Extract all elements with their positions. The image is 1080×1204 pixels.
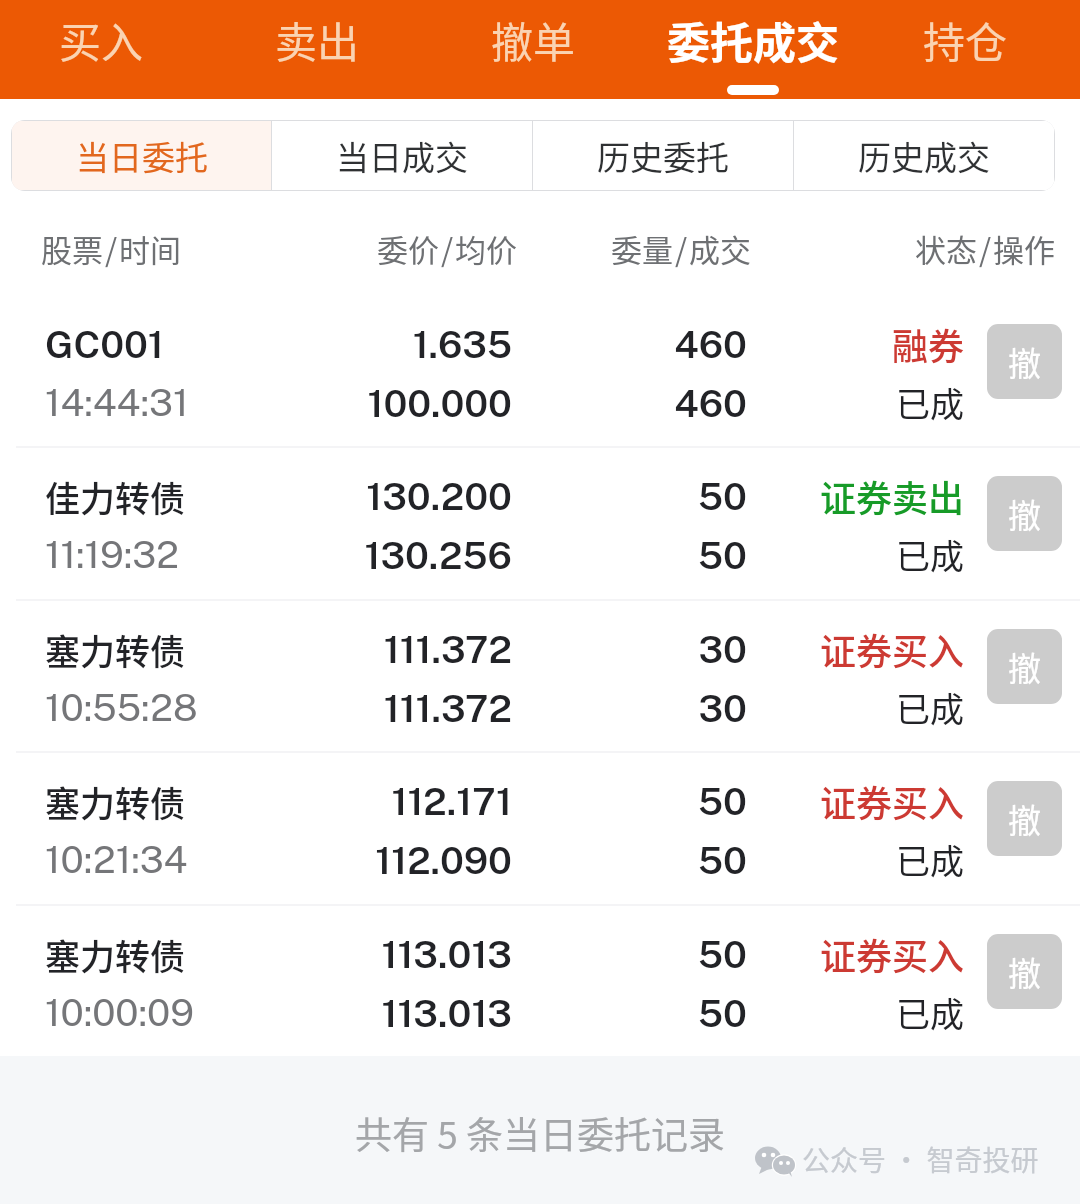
staticText: 460 xyxy=(0,381,747,426)
staticText: 卖出 xyxy=(275,9,360,70)
staticText: 10:55:28 xyxy=(45,685,198,730)
staticText: 50 xyxy=(0,474,747,519)
staticText: GC001 xyxy=(45,322,164,367)
staticText: 委价 / 均价 xyxy=(377,226,518,271)
button[interactable]: 塞力转债 xyxy=(0,751,1080,904)
staticText: 委托成交 xyxy=(667,9,839,71)
staticText: 30 xyxy=(0,627,747,672)
staticText: 112.171 xyxy=(0,779,512,824)
button[interactable]: 撤单 xyxy=(987,324,1062,399)
staticText: 10:21:34 xyxy=(45,837,188,882)
staticText: 130.256 xyxy=(0,533,512,578)
staticText: 塞力转债 xyxy=(45,624,186,675)
staticText: 证券买入 xyxy=(0,623,964,675)
staticText: 113.013 xyxy=(0,932,512,977)
staticText: 撤 xyxy=(1008,338,1041,386)
button[interactable]: 买入 xyxy=(0,0,209,99)
staticText: 已成 xyxy=(0,988,964,1037)
staticText: 50 xyxy=(0,533,747,578)
button[interactable]: 历史成交 xyxy=(794,121,1054,190)
staticText: 历史委托 xyxy=(597,132,729,180)
staticText: 共有 5 条当日委托记录 xyxy=(0,1106,1080,1160)
staticText: 证券卖出 xyxy=(0,470,964,522)
staticText: 已成 xyxy=(0,835,964,884)
button[interactable]: 撤单 xyxy=(987,934,1062,1009)
staticText: 50 xyxy=(0,838,747,883)
staticText: 证券买入 xyxy=(0,775,964,827)
staticText: 50 xyxy=(0,932,747,977)
staticText: 100.000 xyxy=(0,381,512,426)
button[interactable]: GC001 xyxy=(0,294,1080,447)
button[interactable]: 塞力转债 xyxy=(0,599,1080,752)
staticText: 塞力转债 xyxy=(45,929,186,980)
staticText: 14:44:31 xyxy=(45,380,189,425)
staticText: 公众号 · 智奇投研 xyxy=(802,1139,1039,1180)
staticText: 委量 / 成交 xyxy=(611,226,752,271)
staticText: 112.090 xyxy=(0,838,512,883)
staticText: 撤 xyxy=(1008,948,1041,996)
button[interactable]: 历史委托 xyxy=(533,121,793,190)
staticText: 460 xyxy=(0,322,747,367)
staticText: 撤 xyxy=(1008,643,1041,691)
button[interactable]: 持仓 xyxy=(857,0,1073,99)
staticText: 持仓 xyxy=(923,9,1008,70)
button[interactable]: 委托成交 xyxy=(641,0,857,99)
staticText: 证券买入 xyxy=(0,928,964,980)
staticText: 当日委托 xyxy=(76,132,208,180)
button[interactable]: 撤单 xyxy=(987,629,1062,704)
staticText: 已成 xyxy=(0,683,964,732)
staticText: 50 xyxy=(0,779,747,824)
staticText: 50 xyxy=(0,991,747,1036)
staticText: 11:19:32 xyxy=(45,532,179,577)
staticText: 130.200 xyxy=(0,474,512,519)
staticText: 撤 xyxy=(1008,490,1041,538)
staticText: 111.372 xyxy=(0,627,512,672)
staticText: 已成 xyxy=(0,530,964,579)
staticText: 历史成交 xyxy=(858,132,990,180)
staticText: 融券 xyxy=(0,318,964,370)
button[interactable]: 卖出 xyxy=(209,0,425,99)
button[interactable]: 当日委托 xyxy=(12,121,271,190)
staticText: 10:00:09 xyxy=(45,990,194,1035)
staticText: 塞力转债 xyxy=(45,776,186,827)
button[interactable]: 佳力转债 xyxy=(0,446,1080,599)
button[interactable]: 撤单 xyxy=(987,476,1062,551)
staticText: 股票 / 时间 xyxy=(41,226,182,271)
staticText: 当日成交 xyxy=(336,132,468,180)
other: 微信公众号 xyxy=(752,1144,794,1175)
button[interactable]: 撤单 xyxy=(987,781,1062,856)
staticText: 状态 / 操作 xyxy=(915,226,1056,271)
staticText: 113.013 xyxy=(0,991,512,1036)
button[interactable]: 塞力转债 xyxy=(0,904,1080,1057)
staticText: 撤 xyxy=(1008,795,1041,843)
staticText: 买入 xyxy=(59,9,144,70)
staticText: 已成 xyxy=(0,378,964,427)
staticText: 1.635 xyxy=(0,322,512,367)
staticText: 佳力转债 xyxy=(45,471,186,522)
button[interactable]: 当日成交 xyxy=(272,121,532,190)
staticText: 30 xyxy=(0,686,747,731)
staticText: 111.372 xyxy=(0,686,512,731)
button[interactable]: 撤单 xyxy=(425,0,641,99)
staticText: 撤单 xyxy=(491,9,576,70)
